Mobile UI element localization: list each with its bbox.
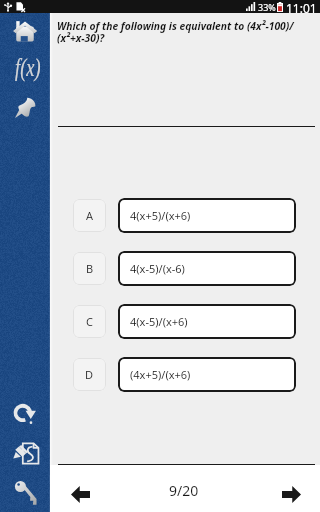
staticText: f(x) — [15, 55, 41, 82]
button[interactable]: D — [73, 358, 106, 391]
staticText: B — [86, 261, 94, 276]
button[interactable]: Previous question — [63, 477, 97, 511]
button[interactable]: C — [73, 305, 106, 338]
staticText: 11:01 — [286, 0, 317, 13]
button[interactable]: (4x+5)/(x+6) — [118, 357, 296, 392]
button[interactable]: B — [73, 252, 106, 285]
button[interactable]: Formulas — [0, 52, 50, 82]
button[interactable]: 4(x-5)/(x+6) — [118, 304, 296, 339]
button[interactable]: Key — [0, 473, 50, 512]
button[interactable]: Home — [0, 13, 50, 50]
staticText: 4(x-5)/(x-6) — [130, 261, 185, 276]
staticText: D — [85, 367, 94, 382]
staticText: 9/20 — [169, 481, 199, 500]
button[interactable]: 4(x+5)/(x+6) — [118, 198, 296, 233]
button[interactable]: A — [73, 199, 106, 232]
button[interactable]: Next question — [274, 477, 308, 511]
staticText: Which of the following is equivalent to … — [57, 19, 316, 45]
staticText: 4(x-5)/(x+6) — [130, 314, 188, 329]
button[interactable]: Pin — [0, 90, 50, 125]
staticText: (4x+5)/(x+6) — [130, 367, 191, 382]
button[interactable]: Notes — [0, 435, 50, 472]
staticText: A — [86, 208, 94, 223]
staticText: 33% — [258, 1, 276, 13]
button[interactable]: 4(x-5)/(x-6) — [118, 251, 296, 286]
button[interactable]: Redo — [0, 398, 50, 431]
staticText: C — [86, 314, 93, 329]
staticText: 4(x+5)/(x+6) — [130, 208, 191, 223]
